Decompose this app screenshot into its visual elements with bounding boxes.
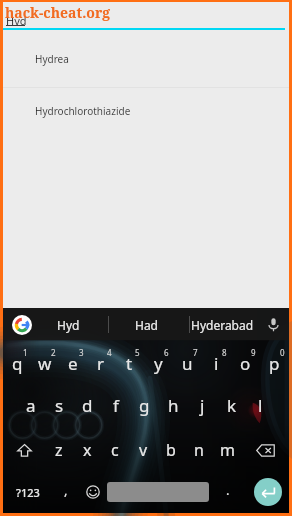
button[interactable]: k — [217, 386, 246, 429]
staticText: Hyd — [6, 13, 27, 26]
staticText: w — [38, 352, 52, 375]
button[interactable]: ?123 — [3, 471, 53, 513]
button[interactable]: 0 — [260, 341, 289, 386]
button[interactable]: c — [101, 429, 129, 471]
staticText: hack-cheat.org — [5, 3, 111, 22]
staticText: Hyd — [57, 317, 80, 333]
staticText: n — [194, 439, 204, 461]
staticText: z — [55, 439, 63, 461]
button[interactable]: s — [45, 386, 73, 429]
button[interactable]: a — [17, 386, 45, 429]
button[interactable]: 6 — [144, 341, 173, 386]
button[interactable]: 9 — [231, 341, 260, 386]
button[interactable]: . — [209, 471, 247, 513]
button[interactable]: Enter — [247, 471, 289, 513]
staticText: j — [200, 394, 205, 417]
staticText: Hyderabad — [191, 317, 254, 333]
staticText: 0 — [280, 347, 285, 358]
button[interactable]: g — [130, 386, 159, 429]
staticText: x — [83, 439, 92, 461]
button[interactable]: 5 — [115, 341, 144, 386]
staticText: Hydrea — [35, 52, 69, 66]
staticText: 8 — [222, 347, 227, 358]
button[interactable]: h — [159, 386, 188, 429]
button[interactable]: Hydrochlorothiazide — [3, 88, 289, 134]
button[interactable]: Hyderabad — [190, 308, 257, 341]
staticText: 6 — [164, 347, 169, 358]
button[interactable]: , — [53, 471, 78, 513]
button[interactable]: f — [101, 386, 130, 429]
button[interactable]: 2 — [31, 341, 59, 386]
button[interactable]: d — [73, 386, 101, 429]
staticText: 1 — [23, 347, 28, 358]
button[interactable]: z — [45, 429, 73, 471]
button[interactable]: l — [246, 386, 275, 429]
staticText: 3 — [79, 347, 84, 358]
staticText: i — [214, 352, 219, 375]
staticText: 9 — [251, 347, 256, 358]
button[interactable]: Backspace — [241, 429, 289, 471]
staticText: q — [12, 352, 23, 375]
staticText: a — [26, 394, 36, 417]
staticText: l — [258, 394, 263, 417]
button[interactable]: 3 — [59, 341, 87, 386]
staticText: Had — [135, 317, 159, 333]
staticText: ?123 — [16, 485, 40, 500]
staticText: 5 — [135, 347, 140, 358]
staticText: k — [227, 394, 237, 417]
button[interactable]: Had — [109, 308, 189, 341]
staticText: y — [154, 352, 163, 375]
staticText: m — [220, 439, 235, 461]
button[interactable]: v — [129, 429, 157, 471]
staticText: t — [126, 352, 133, 375]
staticText: 4 — [107, 347, 112, 358]
button[interactable]: Voice input — [257, 308, 289, 341]
button[interactable]: Emoji — [78, 471, 107, 513]
button[interactable]: j — [188, 386, 217, 429]
button[interactable]: Google search — [3, 308, 41, 341]
button[interactable]: 7 — [173, 341, 202, 386]
staticText: . — [226, 481, 230, 499]
staticText: 7 — [193, 347, 198, 358]
button[interactable]: n — [185, 429, 213, 471]
staticText: v — [139, 439, 148, 461]
button[interactable]: m — [213, 429, 241, 471]
button[interactable]: 4 — [87, 341, 115, 386]
staticText: b — [166, 439, 176, 461]
button[interactable]: Shift — [3, 429, 45, 471]
staticText: d — [82, 394, 93, 417]
staticText: u — [182, 352, 193, 375]
button[interactable]: Hydrea — [3, 30, 289, 87]
staticText: e — [68, 352, 78, 375]
button[interactable]: b — [157, 429, 185, 471]
staticText: f — [113, 394, 119, 417]
button[interactable]: Space — [107, 471, 209, 513]
staticText: Hydrochlorothiazide — [35, 104, 131, 118]
staticText: o — [240, 352, 251, 375]
staticText: r — [97, 352, 105, 375]
button[interactable]: x — [73, 429, 101, 471]
button[interactable]: 8 — [202, 341, 231, 386]
staticText: g — [139, 394, 150, 417]
staticText: s — [55, 394, 64, 417]
staticText: , — [64, 481, 68, 499]
staticText: c — [111, 439, 119, 461]
staticText: 2 — [51, 347, 56, 358]
button[interactable]: Hyd — [41, 308, 108, 341]
button[interactable]: 1 — [3, 341, 31, 386]
staticText: p — [269, 352, 280, 375]
staticText: h — [168, 394, 179, 417]
